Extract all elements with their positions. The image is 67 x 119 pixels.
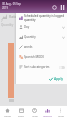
button[interactable]: More (54, 106, 67, 119)
button[interactable]: Diary (14, 106, 28, 119)
button[interactable]: Apply (48, 75, 65, 82)
button[interactable]: Day (16, 22, 67, 32)
staticText: Apply (54, 76, 64, 81)
button[interactable]: Stats (28, 106, 41, 119)
staticText: More (58, 114, 64, 117)
button[interactable]: Sort subcategories (16, 62, 67, 72)
staticText: 7 Quantity (1, 19, 14, 27)
button[interactable]: Spanish MODE (16, 52, 67, 62)
staticText: Spanish MODE (24, 55, 45, 59)
staticText: Home (4, 114, 11, 117)
staticText: Sort subcategories (24, 65, 50, 69)
staticText: Diary (18, 114, 24, 117)
button[interactable]: Quantity (16, 32, 67, 42)
staticText: Reports (43, 114, 52, 117)
staticText: Stats (32, 114, 38, 117)
button[interactable]: Refresh (50, 3, 58, 11)
staticText: words (24, 45, 33, 49)
button[interactable]: Reports (41, 106, 54, 119)
staticText: Quantity (24, 35, 36, 39)
button[interactable]: Home (0, 106, 14, 119)
staticText: Ratio (9, 14, 18, 19)
button[interactable]: words (16, 42, 67, 52)
staticText: 30 Aug - 05 Sep 2019 (2, 2, 21, 9)
button[interactable]: Compare (58, 3, 66, 11)
staticText: Scheduled quantity is logged quantity (24, 14, 64, 22)
staticText: Day (24, 25, 30, 29)
